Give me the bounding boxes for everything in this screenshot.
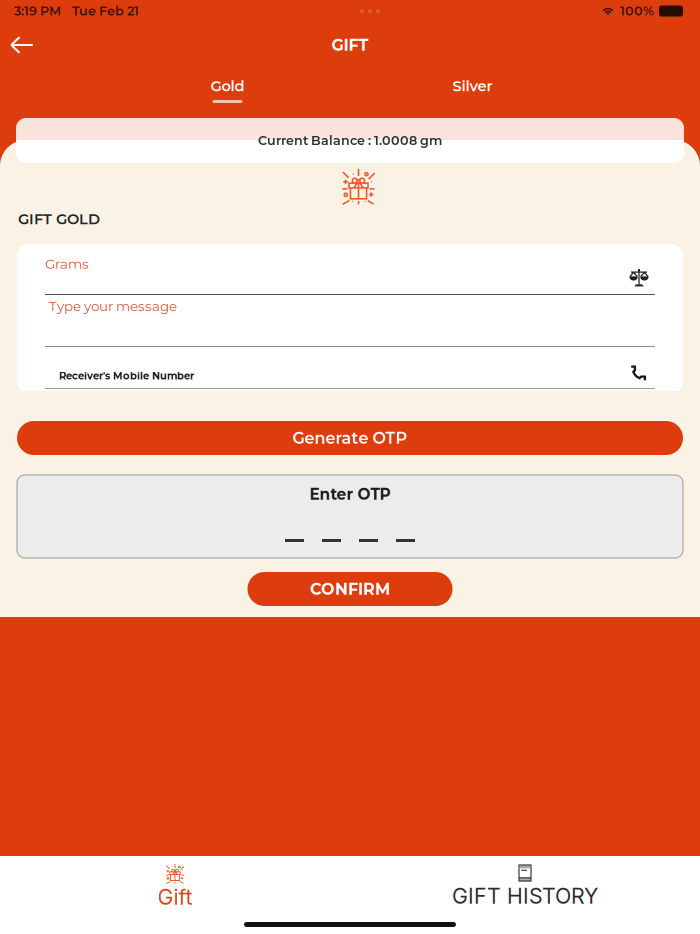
staticText: Receiver's Mobile Number bbox=[59, 370, 194, 382]
button[interactable]: Silver bbox=[350, 68, 595, 104]
button[interactable]: Gift bbox=[0, 863, 350, 910]
staticText: Grams bbox=[45, 256, 89, 272]
button[interactable]: Back bbox=[0, 27, 44, 63]
staticText: 100% bbox=[620, 3, 654, 19]
staticText: GIFT bbox=[331, 35, 368, 55]
staticText: Silver bbox=[452, 77, 492, 95]
button[interactable]: Generate OTP bbox=[17, 421, 683, 455]
button[interactable]: Gold bbox=[105, 68, 350, 104]
staticText: Enter OTP bbox=[309, 485, 390, 504]
staticText: Gift bbox=[157, 884, 192, 910]
staticText: 3:19 PM bbox=[14, 3, 61, 19]
button[interactable]: CONFIRM bbox=[247, 572, 452, 606]
button[interactable]: GIFT HISTORY bbox=[350, 864, 700, 909]
staticText: Generate OTP bbox=[292, 428, 407, 448]
staticText: GIFT GOLD bbox=[18, 210, 100, 228]
staticText: CONFIRM bbox=[310, 579, 390, 599]
staticText: GIFT HISTORY bbox=[452, 883, 598, 909]
staticText: Current Balance : 1.0008 gm bbox=[258, 133, 442, 148]
staticText: Tue Feb 21 bbox=[72, 3, 139, 19]
staticText: Gold bbox=[210, 77, 244, 95]
staticText: Type your message bbox=[49, 298, 177, 314]
